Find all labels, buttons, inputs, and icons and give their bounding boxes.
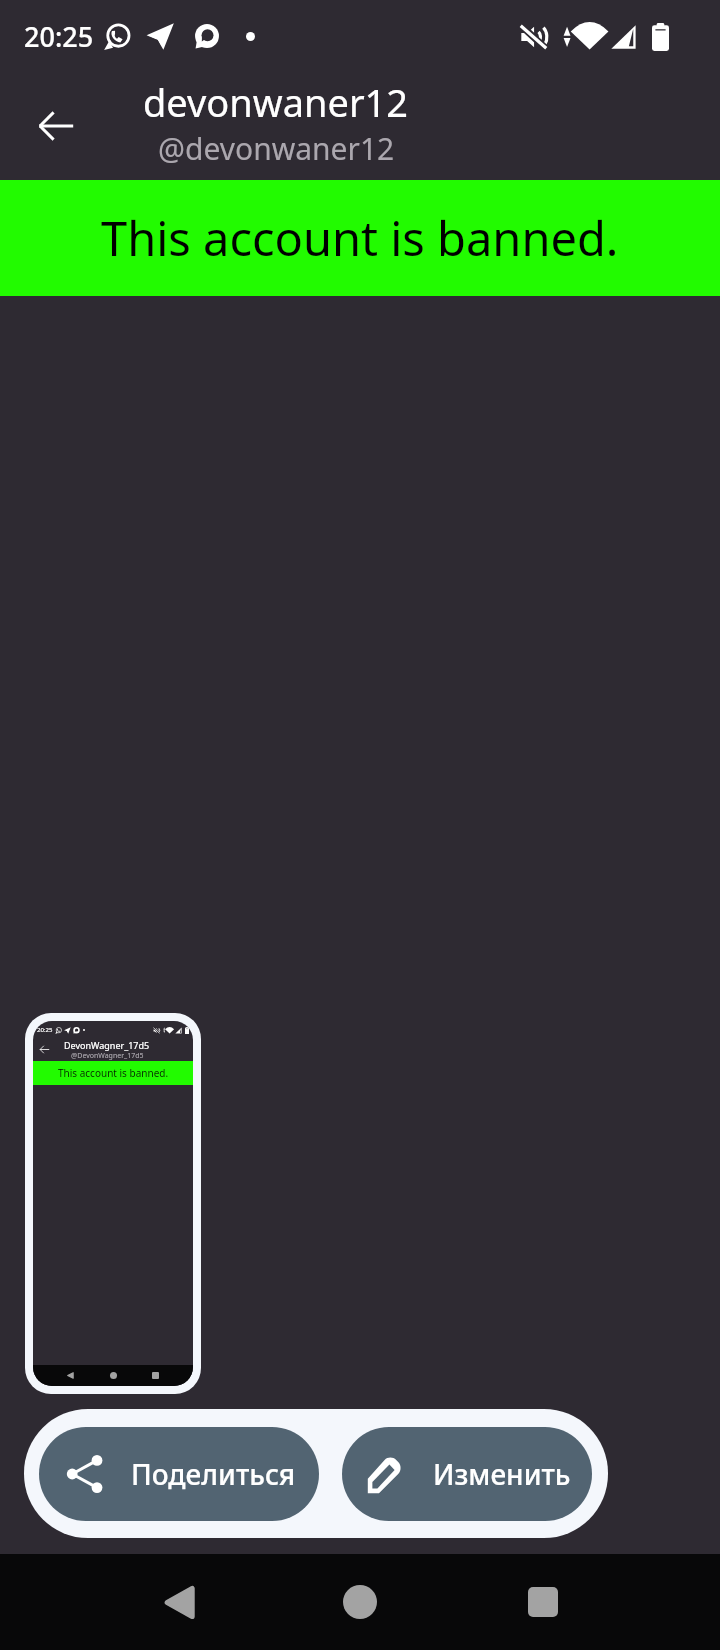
staticText: This account is banned.	[101, 206, 619, 270]
staticText: Изменить	[433, 1455, 571, 1493]
staticText: @devonwaner12	[158, 128, 395, 169]
button[interactable]: Back	[22, 92, 90, 160]
staticText: @DevonWagner_17d5	[71, 1051, 144, 1061]
staticText: devonwaner12	[143, 76, 409, 128]
button[interactable]: Back	[144, 1566, 216, 1638]
button[interactable]: Изменить	[342, 1427, 592, 1521]
staticText: 20:25	[37, 1026, 53, 1034]
staticText: Поделиться	[131, 1455, 296, 1493]
staticText: DevonWagner_17d5	[64, 1039, 150, 1051]
staticText: 20:25	[24, 18, 94, 55]
button[interactable]: Home	[324, 1566, 396, 1638]
button[interactable]: Поделиться	[39, 1427, 319, 1521]
button[interactable]: Recents	[507, 1566, 579, 1638]
staticText: This account is banned.	[58, 1066, 169, 1080]
